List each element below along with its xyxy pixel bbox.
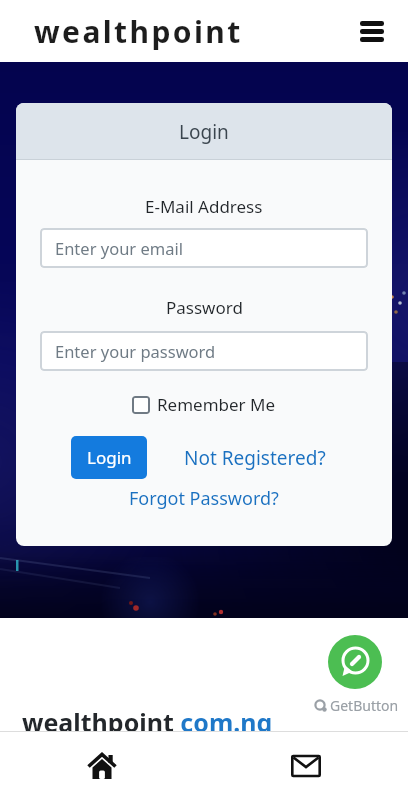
staticText: wealthpoint com.ng — [22, 705, 273, 739]
staticText: Enter your email — [55, 237, 183, 259]
button[interactable] — [0, 731, 204, 800]
staticText: E-Mail Address — [145, 195, 263, 218]
button[interactable]: Enter your email — [40, 228, 368, 268]
button[interactable]: Not Registered? — [184, 445, 326, 471]
button[interactable]: Forgot Password? — [129, 486, 279, 511]
button[interactable]: Login — [71, 436, 147, 479]
button[interactable] — [328, 635, 382, 689]
staticText: Login — [179, 119, 229, 145]
staticText: wealthpoint — [34, 11, 243, 52]
staticText: Password — [166, 296, 243, 319]
button[interactable]: Enter your password — [40, 331, 368, 371]
staticText: Remember Me — [157, 393, 276, 416]
staticText: Login — [87, 446, 132, 469]
button[interactable] — [360, 21, 384, 42]
staticText: GetButton — [330, 696, 399, 715]
staticText: Enter your password — [55, 340, 216, 362]
button[interactable]: Remember Me — [16, 393, 392, 416]
button[interactable] — [204, 731, 408, 800]
